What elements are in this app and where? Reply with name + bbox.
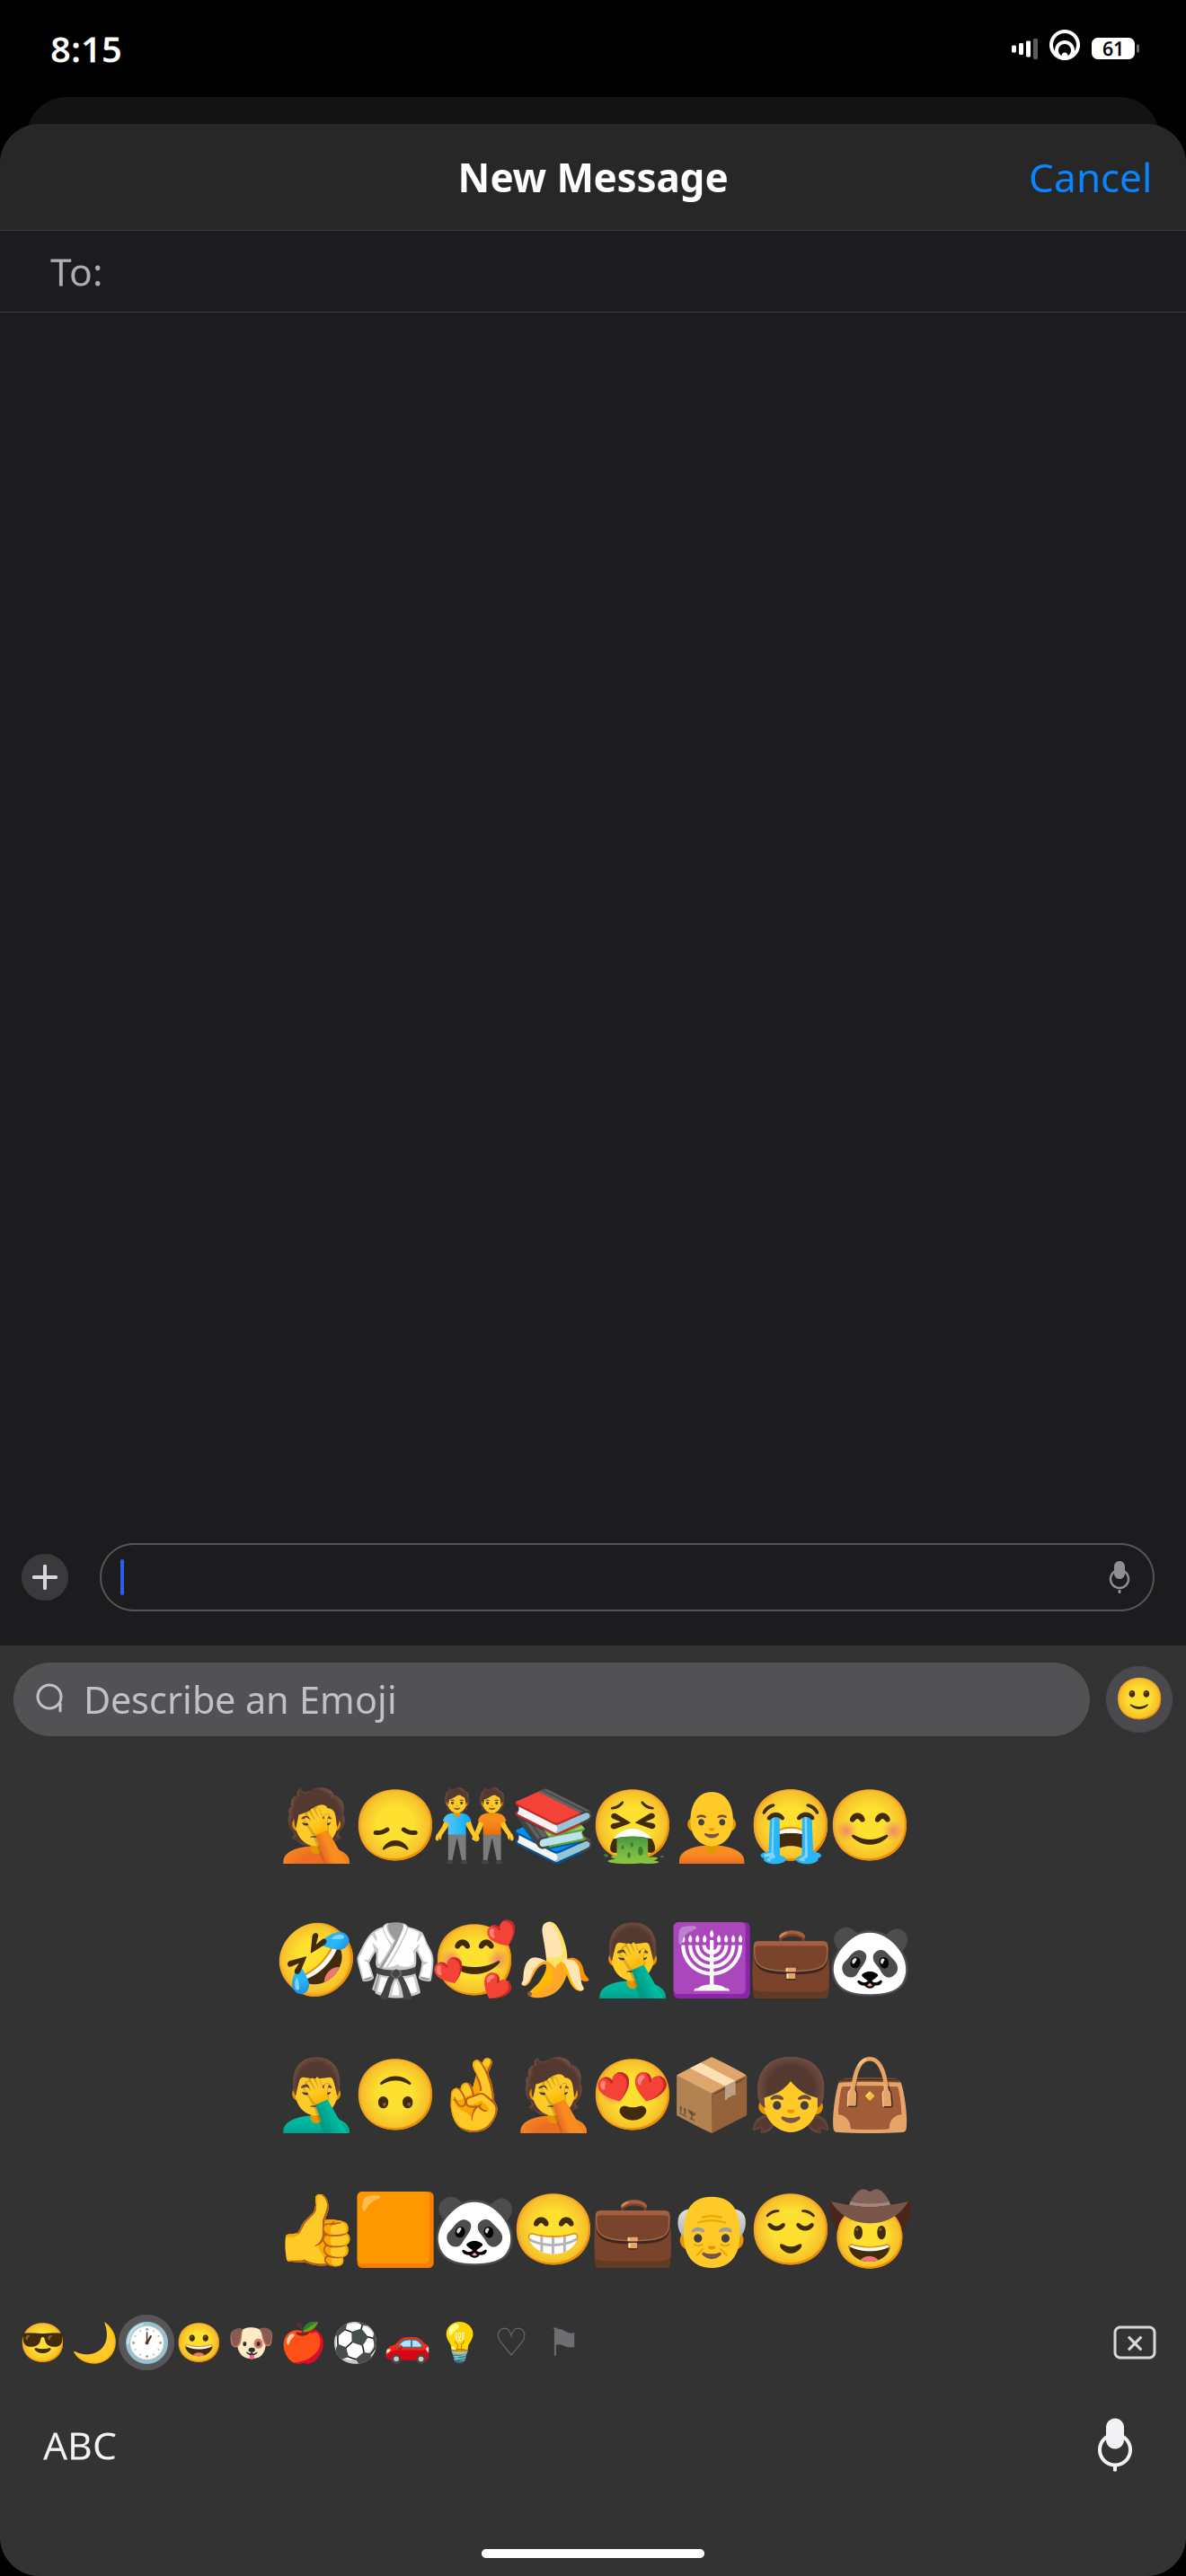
staticText: 🚗 [383, 2321, 431, 2364]
button[interactable]: Emoji [277, 1893, 356, 2028]
button[interactable]: ABC [25, 2407, 135, 2483]
staticText: 💼 [589, 2190, 676, 2270]
button[interactable]: Emoji [514, 2163, 593, 2298]
button[interactable]: Emoji [830, 2163, 909, 2298]
staticText: ♡ [494, 2321, 528, 2364]
staticText: 🥰 [431, 1921, 518, 2000]
staticText: 🟧 [352, 2190, 438, 2270]
staticText: 👴 [668, 2190, 755, 2270]
button[interactable]: Emoji [593, 2163, 672, 2298]
button[interactable]: Emoji [593, 1893, 672, 2028]
button[interactable]: Emoji category [173, 2308, 225, 2377]
staticText: 🐼 [827, 1921, 913, 2000]
button[interactable]: Emoji [277, 2163, 356, 2298]
staticText: 💼 [748, 1921, 834, 2000]
button[interactable]: Emoji [751, 1893, 830, 2028]
staticText: 🤦 [273, 1786, 359, 1866]
button[interactable]: Emoji category [277, 2308, 329, 2377]
staticText: ⚑ [546, 2321, 580, 2364]
staticText: 💡 [435, 2321, 483, 2364]
button[interactable]: Emoji [751, 2163, 830, 2298]
staticText: 🥋 [352, 1921, 438, 2000]
button[interactable]: Emoji [751, 1759, 830, 1893]
button[interactable]: Emoji [277, 2028, 356, 2163]
staticText: 😍 [589, 2056, 676, 2135]
staticText: 😎 [18, 2321, 66, 2364]
staticText: 🕐 [123, 2321, 170, 2364]
button[interactable]: Emoji [356, 1759, 435, 1893]
button[interactable]: Emoji [751, 2028, 830, 2163]
staticText: Describe an Emoji [84, 1675, 397, 1724]
button[interactable]: Emoji category [485, 2308, 537, 2377]
staticText: 🙃 [352, 2056, 438, 2135]
button[interactable]: Emoji [435, 1893, 514, 2028]
staticText: 👜 [827, 2056, 913, 2135]
button[interactable]: Emoji [435, 1759, 514, 1893]
button[interactable]: Emoji [356, 2163, 435, 2298]
staticText: ABC [43, 2419, 117, 2470]
button[interactable]: Emoji category [329, 2308, 381, 2377]
button[interactable]: Emoji [672, 1759, 751, 1893]
staticText: 🤦‍♂️ [589, 1921, 676, 2000]
staticText: 👍 [273, 2190, 359, 2270]
button[interactable]: Emoji category [120, 2308, 173, 2377]
button[interactable]: Dictate [1084, 2411, 1146, 2479]
button[interactable]: Add attachment [11, 1543, 79, 1611]
button[interactable]: Emoji [830, 1893, 909, 2028]
button[interactable]: To recipients field [0, 231, 1186, 312]
staticText: To: [50, 246, 102, 297]
button[interactable]: Emoji [593, 1759, 672, 1893]
staticText: 61 [1102, 36, 1124, 61]
button[interactable]: Emoji [356, 2028, 435, 2163]
button[interactable]: Emoji [435, 2163, 514, 2298]
button[interactable]: Emoji [672, 2163, 751, 2298]
button[interactable]: Emoji category [381, 2308, 433, 2377]
staticText: 8:15 [50, 25, 122, 72]
staticText: 🤣 [273, 1921, 359, 2000]
staticText: 🍌 [510, 1921, 597, 2000]
button[interactable]: Emoji [435, 2028, 514, 2163]
staticText: 🙂 [1114, 1676, 1164, 1723]
staticText: 🤮 [589, 1786, 676, 1866]
button[interactable]: Cancel [1013, 142, 1168, 212]
staticText: 🐶 [227, 2321, 274, 2364]
staticText: 👧 [748, 2056, 834, 2135]
staticText: 🤞 [431, 2056, 518, 2135]
staticText: 🤦 [510, 2056, 597, 2135]
staticText: 🧑‍🤝‍🧑 [431, 1786, 518, 1866]
staticText: 🧑‍🦲 [668, 1786, 755, 1866]
button[interactable]: Emoji [830, 1759, 909, 1893]
button[interactable]: Emoji category [68, 2308, 120, 2377]
button[interactable]: Emoji [593, 2028, 672, 2163]
staticText: 🕎 [668, 1921, 755, 2000]
button[interactable]: Emoji [514, 1893, 593, 2028]
staticText: 📦 [668, 2056, 755, 2135]
button[interactable]: Emoji [672, 1893, 751, 2028]
button[interactable]: Emoji [356, 1893, 435, 2028]
button[interactable]: Delete [1103, 2308, 1166, 2377]
staticText: 😊 [827, 1786, 913, 1866]
staticText: 😭 [748, 1786, 834, 1866]
staticText: 🐼 [431, 2190, 518, 2270]
button[interactable]: Emoji [514, 1759, 593, 1893]
button[interactable]: Emoji [672, 2028, 751, 2163]
staticText: 📚 [510, 1786, 597, 1866]
button[interactable]: Emoji category [433, 2308, 485, 2377]
staticText: 🤦‍♂️ [273, 2056, 359, 2135]
staticText: 🌙 [71, 2321, 118, 2364]
button[interactable]: Emoji category [537, 2308, 589, 2377]
staticText: 😀 [175, 2321, 222, 2364]
button[interactable]: Create Genmoji [1106, 1666, 1173, 1733]
button[interactable]: Emoji [277, 1759, 356, 1893]
button[interactable]: Emoji category [225, 2308, 277, 2377]
button[interactable]: Emoji category [16, 2308, 68, 2377]
staticText: 😁 [510, 2190, 597, 2270]
staticText: Cancel [1029, 151, 1152, 203]
staticText: × [1125, 2320, 1144, 2365]
button[interactable]: Emoji [514, 2028, 593, 2163]
staticText: 🍎 [279, 2321, 327, 2364]
button[interactable]: Emoji [830, 2028, 909, 2163]
staticText: 😌 [748, 2190, 834, 2270]
staticText: 😞 [352, 1786, 438, 1866]
button[interactable]: Describe an Emoji [13, 1663, 1090, 1736]
